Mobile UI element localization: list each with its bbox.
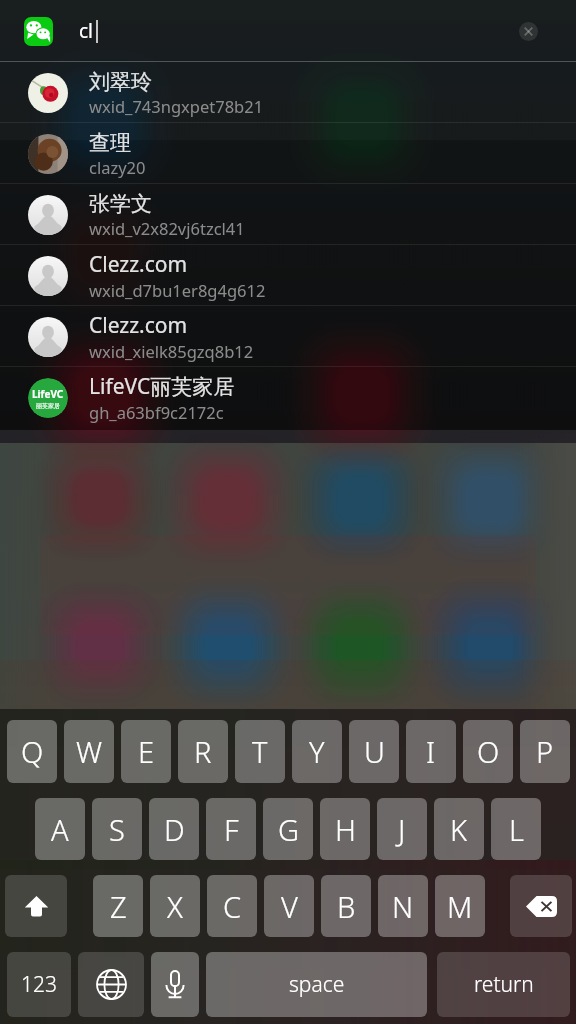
staticText: wxid_v2x82vj6tzcl41 [89,217,245,239]
staticText: H [335,810,356,849]
staticText: I [426,732,436,771]
button[interactable]: J [377,798,427,860]
button[interactable]: F [206,798,256,860]
staticText: return [474,970,534,999]
button[interactable]: H [320,798,370,860]
staticText: cl [79,18,94,44]
staticText: S [109,810,125,849]
staticText: R [194,732,212,771]
staticText: Clezz.com [89,311,188,340]
button[interactable]: B [321,875,371,937]
button[interactable]: S [92,798,142,860]
button[interactable]: Backspace [510,875,572,937]
staticText: Q [21,732,44,771]
staticText: wxid_xielk85gzq8b12 [89,340,254,362]
staticText: K [450,810,468,849]
button[interactable]: 查理 [0,123,576,184]
button[interactable]: W [64,720,114,783]
button[interactable]: G [263,798,313,860]
button[interactable]: Dictate [151,952,199,1017]
button[interactable]: T [235,720,285,783]
staticText: 查理 [89,130,131,156]
staticText: space [289,970,345,999]
button[interactable]: M [435,875,485,937]
staticText: B [337,887,356,926]
button[interactable]: P [520,720,570,783]
staticText: wxid_d7bu1er8g4g612 [89,279,266,301]
button[interactable]: D [149,798,199,860]
staticText: E [138,732,155,771]
staticText: N [392,887,414,926]
staticText: U [364,732,385,771]
staticText: D [164,810,185,849]
staticText: clazy20 [89,156,146,178]
button[interactable]: X [150,875,200,937]
staticText: Y [309,732,325,771]
staticText: W [76,732,103,771]
staticText: M [447,887,473,926]
button[interactable]: N [378,875,428,937]
staticText: L [509,810,524,849]
button[interactable]: 张学文 [0,184,576,245]
button[interactable]: O [463,720,513,783]
staticText: 123 [21,970,57,999]
staticText: X [167,887,183,926]
staticText: Clezz.com [89,250,188,279]
staticText: A [51,810,69,849]
staticText: wxid_743ngxpet78b21 [89,95,264,117]
button[interactable]: Clear search [513,16,543,46]
button[interactable]: Y [292,720,342,783]
button[interactable]: space [206,952,427,1017]
button[interactable]: LifeVC [0,367,576,428]
button[interactable]: U [349,720,399,783]
button[interactable]: E [121,720,171,783]
staticText: F [224,810,239,849]
staticText: G [278,810,299,849]
button[interactable]: 刘翠玲 [0,62,576,123]
staticText: LifeVC丽芙家居 [89,372,235,401]
button[interactable]: Clezz.com [0,306,576,367]
staticText: V [281,887,298,926]
staticText: C [223,887,242,926]
staticText: 丽芙家居 [36,402,60,410]
button[interactable]: Shift [5,875,67,937]
button[interactable]: 123 [7,952,71,1017]
staticText: 张学文 [89,191,152,217]
staticText: P [536,732,554,771]
button[interactable]: Z [93,875,143,937]
button[interactable]: A [35,798,85,860]
staticText: gh_a63bf9c2172c [89,401,224,423]
button[interactable]: L [491,798,541,860]
staticText: T [252,732,268,771]
button[interactable]: I [406,720,456,783]
button[interactable]: C [207,875,257,937]
staticText: 刘翠玲 [89,69,152,95]
button[interactable]: R [178,720,228,783]
button[interactable]: Q [7,720,57,783]
staticText: LifeVC [32,387,64,401]
staticText: J [398,810,406,849]
staticText: Z [110,887,127,926]
button[interactable]: V [264,875,314,937]
button[interactable]: return [437,952,570,1017]
button[interactable]: Switch keyboard language [78,952,144,1017]
button[interactable]: K [434,798,484,860]
staticText: O [477,732,500,771]
button[interactable]: Clezz.com [0,245,576,306]
